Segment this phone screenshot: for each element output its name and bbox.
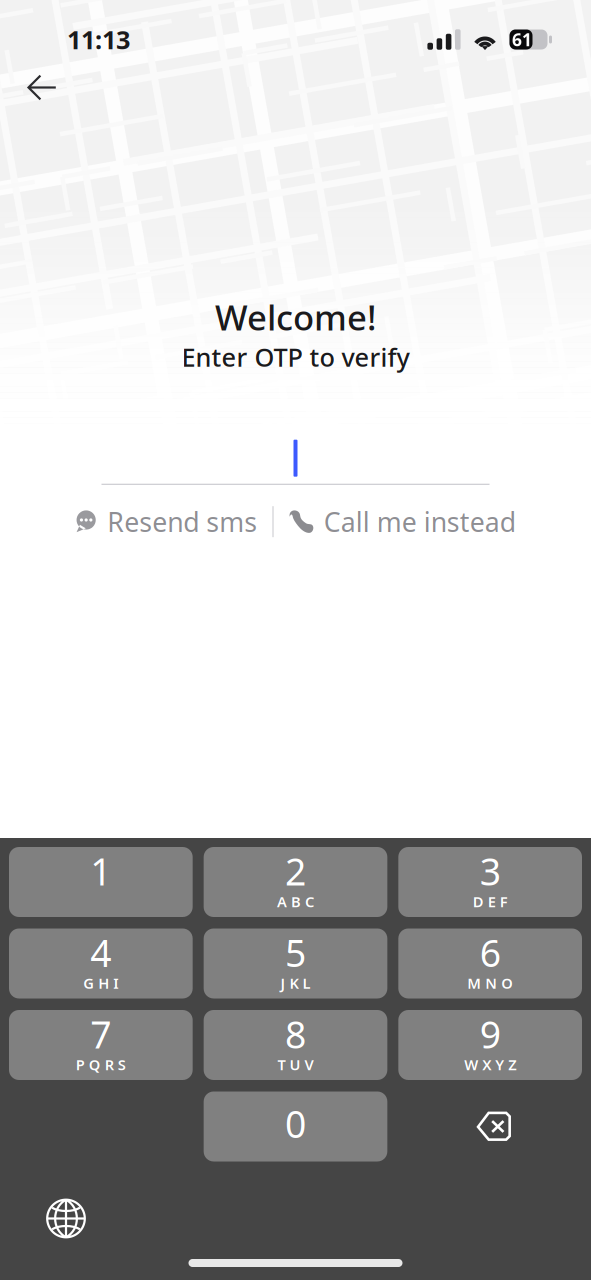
button[interactable]: 9 (398, 1010, 582, 1080)
button[interactable]: 2 (204, 847, 387, 917)
staticText: 4 (90, 928, 111, 977)
staticText: 1 (90, 846, 111, 896)
staticText: Enter OTP to verify (181, 340, 409, 374)
staticText: 3 (480, 846, 501, 896)
staticText: A B C (277, 892, 314, 911)
button[interactable]: 7 (9, 1010, 193, 1080)
staticText: M N O (467, 973, 513, 993)
button[interactable]: 4 (9, 928, 193, 998)
button[interactable]: 6 (398, 928, 582, 998)
staticText: Welcome! (215, 294, 376, 340)
button[interactable]: Call me instead (280, 499, 525, 544)
staticText: 61 (512, 28, 532, 51)
button[interactable]: 1 (9, 847, 193, 917)
staticText: Resend sms (107, 504, 257, 539)
staticText: Call me instead (324, 504, 516, 539)
button[interactable]: 0 (204, 1091, 387, 1161)
button[interactable]: 8 (204, 1010, 387, 1080)
staticText: D E F (473, 892, 508, 911)
staticText: 5 (285, 928, 306, 977)
staticText: T U V (277, 1055, 313, 1074)
staticText: 2 (285, 846, 306, 896)
staticText: P Q R S (76, 1055, 126, 1074)
staticText: 8 (285, 1009, 306, 1059)
staticText: J K L (280, 973, 310, 993)
button[interactable]: Back (17, 59, 67, 111)
staticText: W X Y Z (464, 1055, 516, 1074)
staticText: G H I (83, 973, 118, 993)
button[interactable]: Resend sms (66, 499, 266, 544)
button[interactable]: Next keyboard (31, 1196, 101, 1240)
staticText: 7 (90, 1009, 111, 1059)
staticText: 9 (480, 1009, 501, 1059)
button[interactable]: 5 (204, 928, 387, 998)
staticText: 11:13 (67, 23, 130, 56)
button[interactable]: 3 (398, 847, 582, 917)
staticText: 6 (480, 928, 501, 977)
button[interactable]: Delete (398, 1092, 582, 1161)
staticText: 0 (285, 1099, 306, 1148)
